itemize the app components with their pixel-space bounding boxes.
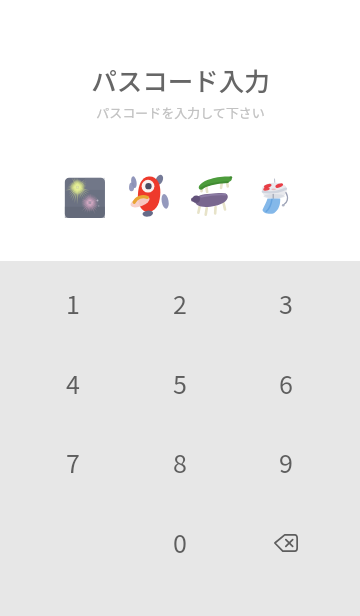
staticText: 4	[66, 365, 80, 401]
button[interactable]: Cucumber horse and eggplant cow	[191, 175, 233, 217]
staticText: 6	[279, 365, 293, 401]
staticText: 5	[173, 365, 187, 401]
button[interactable]: 1	[25, 269, 121, 337]
button[interactable]: Fireworks	[64, 177, 106, 219]
staticText: 0	[173, 524, 187, 560]
button[interactable]: 9	[238, 428, 334, 496]
button[interactable]: 4	[25, 349, 121, 417]
button[interactable]: 0	[132, 508, 228, 576]
staticText: パスコード入力	[91, 61, 270, 98]
button[interactable]: Delete	[238, 508, 334, 576]
button[interactable]: Wind chime	[261, 179, 287, 214]
button[interactable]: 7	[25, 428, 121, 496]
staticText: 3	[279, 285, 293, 321]
staticText: 8	[173, 444, 187, 480]
button[interactable]: 3	[238, 269, 334, 337]
staticText: 9	[279, 444, 293, 480]
button[interactable]: 5	[132, 349, 228, 417]
staticText: パスコードを入力して下さい	[96, 103, 265, 122]
staticText: 7	[66, 444, 80, 480]
staticText: 1	[66, 285, 80, 321]
button[interactable]: Goldfish	[128, 173, 172, 217]
staticText: 2	[173, 285, 187, 321]
button[interactable]: 2	[132, 269, 228, 337]
button[interactable]: 6	[238, 349, 334, 417]
button[interactable]: 8	[132, 428, 228, 496]
